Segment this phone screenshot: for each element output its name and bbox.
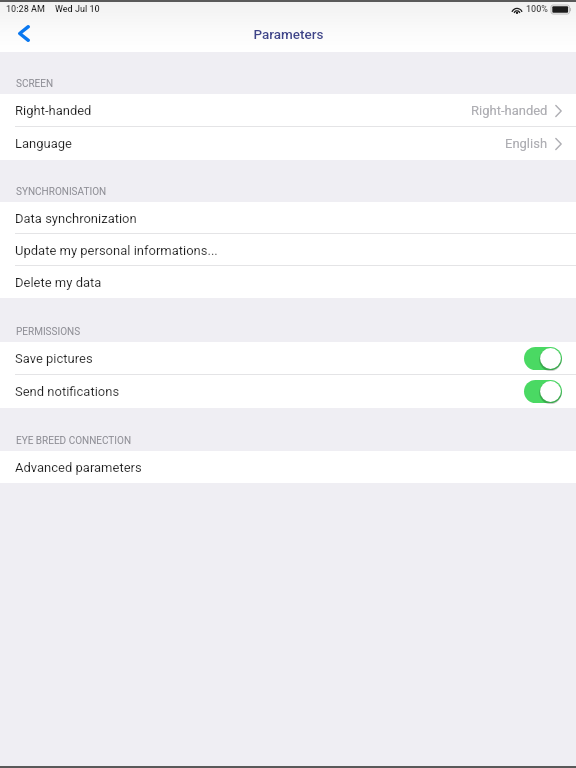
staticText: SCREEN	[16, 78, 54, 90]
staticText: Send notifications	[15, 384, 120, 399]
staticText: Right-handed	[471, 103, 548, 118]
staticText: SYNCHRONISATION	[16, 186, 107, 198]
staticText: Right-handed	[15, 103, 92, 118]
button[interactable]: Language	[0, 127, 576, 160]
staticText: Parameters	[253, 26, 324, 42]
button[interactable]: Delete my data	[0, 266, 576, 298]
staticText: Advanced parameters	[15, 460, 142, 475]
button[interactable]: Data synchronization	[0, 202, 576, 234]
button[interactable]: Send notifications	[0, 375, 576, 408]
staticText: 10:28 AM	[6, 4, 45, 15]
button[interactable]: Advanced parameters	[0, 451, 576, 483]
button[interactable]: Update my personal informations...	[0, 234, 576, 266]
staticText: Wed Jul 10	[55, 4, 100, 15]
staticText: Save pictures	[15, 351, 93, 366]
button[interactable]: Right-handed	[0, 94, 576, 127]
button[interactable]: Back	[7, 18, 39, 49]
staticText: PERMISSIONS	[16, 326, 81, 338]
staticText: Language	[15, 136, 72, 151]
staticText: EYE BREED CONNECTION	[16, 435, 132, 447]
button[interactable]: Toggle on	[524, 380, 562, 403]
staticText: Delete my data	[15, 275, 102, 290]
button[interactable]: Save pictures	[0, 342, 576, 375]
staticText: 100%	[526, 4, 548, 15]
staticText: Data synchronization	[15, 211, 137, 226]
staticText: Update my personal informations...	[15, 243, 218, 258]
staticText: English	[505, 136, 548, 151]
button[interactable]: Toggle on	[524, 347, 562, 370]
